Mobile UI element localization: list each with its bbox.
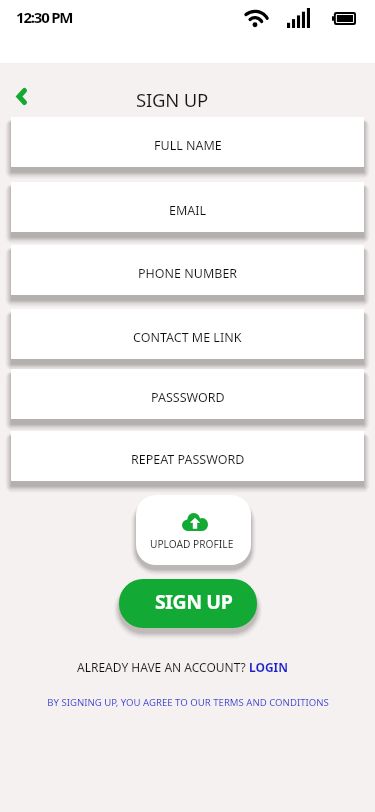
button[interactable]: REPEAT PASSWORD [11, 431, 364, 481]
staticText: CONTACT ME LINK [133, 329, 242, 346]
staticText: FULL NAME [154, 137, 222, 154]
button[interactable]: UPLOAD PROFILE [136, 495, 251, 565]
staticText: REPEAT PASSWORD [131, 451, 245, 468]
staticText: PHONE NUMBER [138, 265, 238, 282]
staticText: PASSSWORD [151, 389, 225, 406]
button[interactable]: EMAIL [11, 182, 364, 232]
staticText: EMAIL [169, 202, 207, 219]
button[interactable]: SIGN UP [119, 579, 257, 628]
button[interactable]: PASSSWORD [11, 369, 364, 419]
staticText: SIGN UP [136, 87, 209, 112]
button[interactable]: BY SIGNING UP, YOU AGREE TO OUR TERMS AN… [47, 696, 329, 709]
button[interactable]: CONTACT ME LINK [11, 309, 364, 359]
button[interactable]: PHONE NUMBER [11, 245, 364, 295]
button[interactable]: FULL NAME [11, 117, 364, 167]
button[interactable]: ALREADY HAVE AN ACCOUNT? LOGIN [77, 659, 288, 675]
button[interactable]: Back [7, 82, 35, 110]
staticText: UPLOAD PROFILE [150, 537, 234, 551]
staticText: SIGN UP [155, 588, 233, 615]
staticText: 12:30 PM [16, 7, 73, 27]
